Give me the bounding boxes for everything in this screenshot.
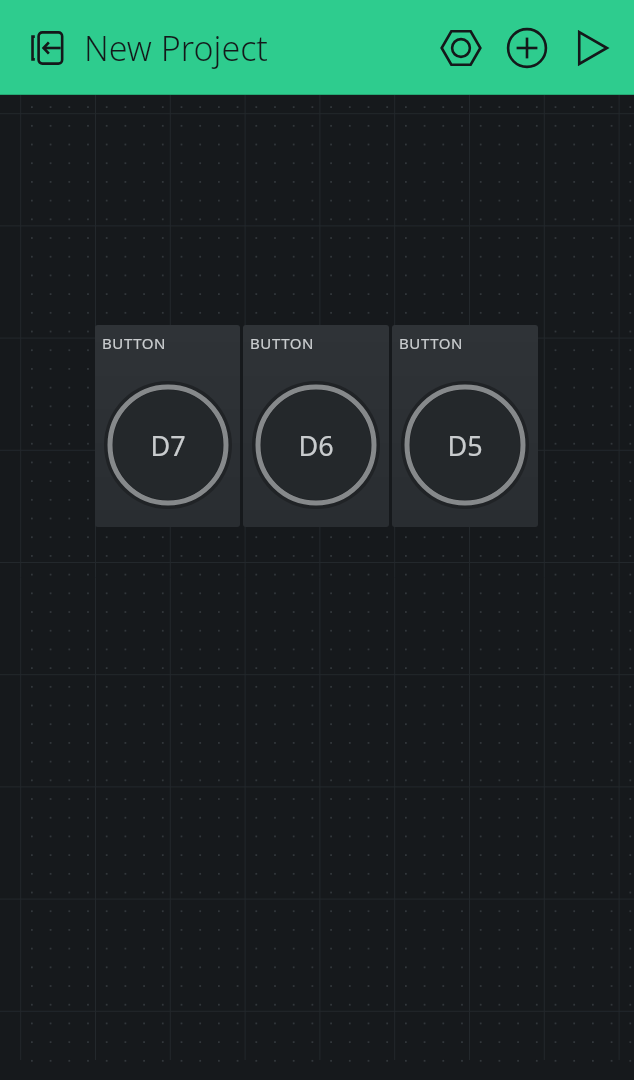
staticText: D6 [298, 427, 334, 464]
staticText: BUTTON [250, 333, 315, 353]
staticText: New Project [84, 25, 268, 71]
staticText: BUTTON [399, 333, 464, 353]
button[interactable]: Back to projects [22, 20, 78, 76]
button[interactable]: Run project [562, 19, 620, 77]
button[interactable]: BUTTON [95, 325, 240, 527]
staticText: BUTTON [102, 333, 167, 353]
button[interactable]: Settings [432, 19, 490, 77]
staticText: D5 [447, 427, 483, 464]
button[interactable]: Add component [498, 19, 556, 77]
button[interactable]: BUTTON [392, 325, 538, 527]
button[interactable]: BUTTON [243, 325, 389, 527]
staticText: D7 [150, 427, 186, 464]
